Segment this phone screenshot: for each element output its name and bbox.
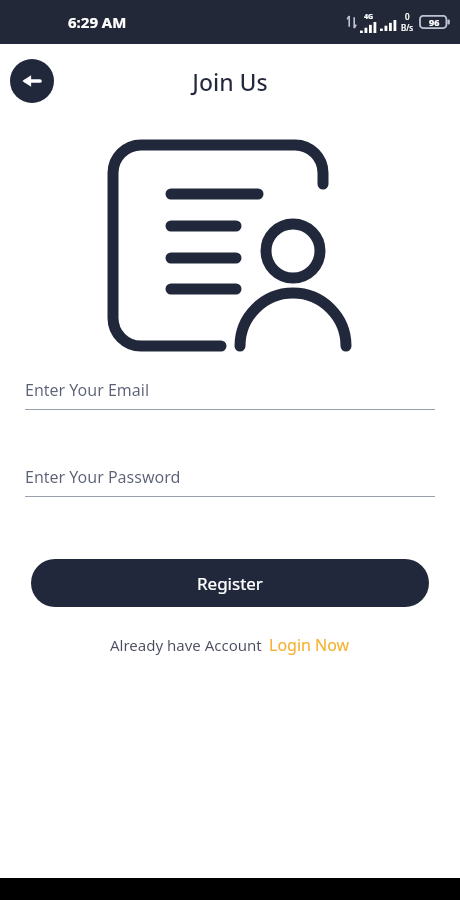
staticText: 4G	[364, 12, 374, 22]
staticText: Enter Your Password	[25, 466, 181, 488]
button[interactable]: Enter Your Email	[25, 379, 435, 410]
staticText: Join Us	[0, 66, 460, 97]
staticText: B/s	[401, 22, 414, 33]
staticText: Enter Your Email	[25, 379, 150, 401]
staticText: Register	[197, 572, 263, 595]
staticText: 0	[405, 11, 410, 22]
button[interactable]: Login Now	[269, 634, 350, 656]
staticText: 96	[429, 16, 440, 28]
button[interactable]: Register	[31, 559, 429, 607]
button[interactable]: Enter Your Password	[25, 466, 435, 497]
staticText: 6:29 AM	[68, 12, 127, 32]
staticText: Login Now	[269, 634, 350, 656]
staticText: Already have Account	[110, 635, 262, 655]
button[interactable]: Back	[10, 59, 54, 103]
